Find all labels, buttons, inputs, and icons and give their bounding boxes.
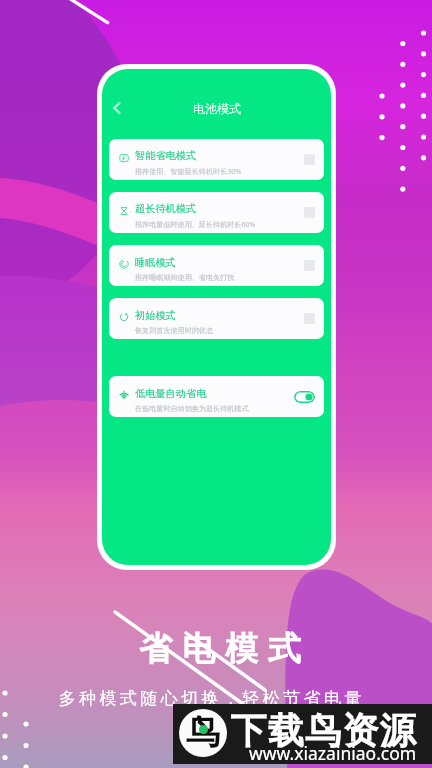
staticText: 多种模式随心切换，轻松节省电量 [57,688,363,709]
staticText: 恢复到首次使用时的状态 [135,326,214,335]
staticText: 推荐电量低时使用、延长待机时长60% [135,219,256,229]
staticText: 在低电量时自动切换为超长待机模式 [135,404,249,413]
button[interactable]: 智能省电模式 [109,139,324,180]
staticText: 推荐睡眠期间使用、省电免打扰 [135,273,235,282]
button[interactable]: 超长待机模式 [109,192,324,233]
button[interactable]: 低电量自动省电 [109,376,324,417]
button[interactable]: 睡眠模式 [109,245,324,286]
staticText: 初始模式 [135,309,176,322]
staticText: 鸟 [186,711,220,754]
staticText: 下载鸟资源 [230,708,416,753]
staticText: 省电模式 [134,628,306,670]
staticText: www.xiazainiao.com [249,741,417,765]
staticText: 低电量自动省电 [135,387,207,400]
staticText: 睡眠模式 [135,256,176,269]
staticText: 智能省电模式 [135,149,197,162]
staticText: 推荐使用、智能延长待机时长30% [135,166,242,176]
button[interactable]: 开关 [294,391,315,403]
button[interactable]: 返回 [104,95,130,121]
staticText: 超长待机模式 [135,202,197,215]
button[interactable]: 初始模式 [109,298,324,339]
staticText: 电池模式 [193,101,241,116]
